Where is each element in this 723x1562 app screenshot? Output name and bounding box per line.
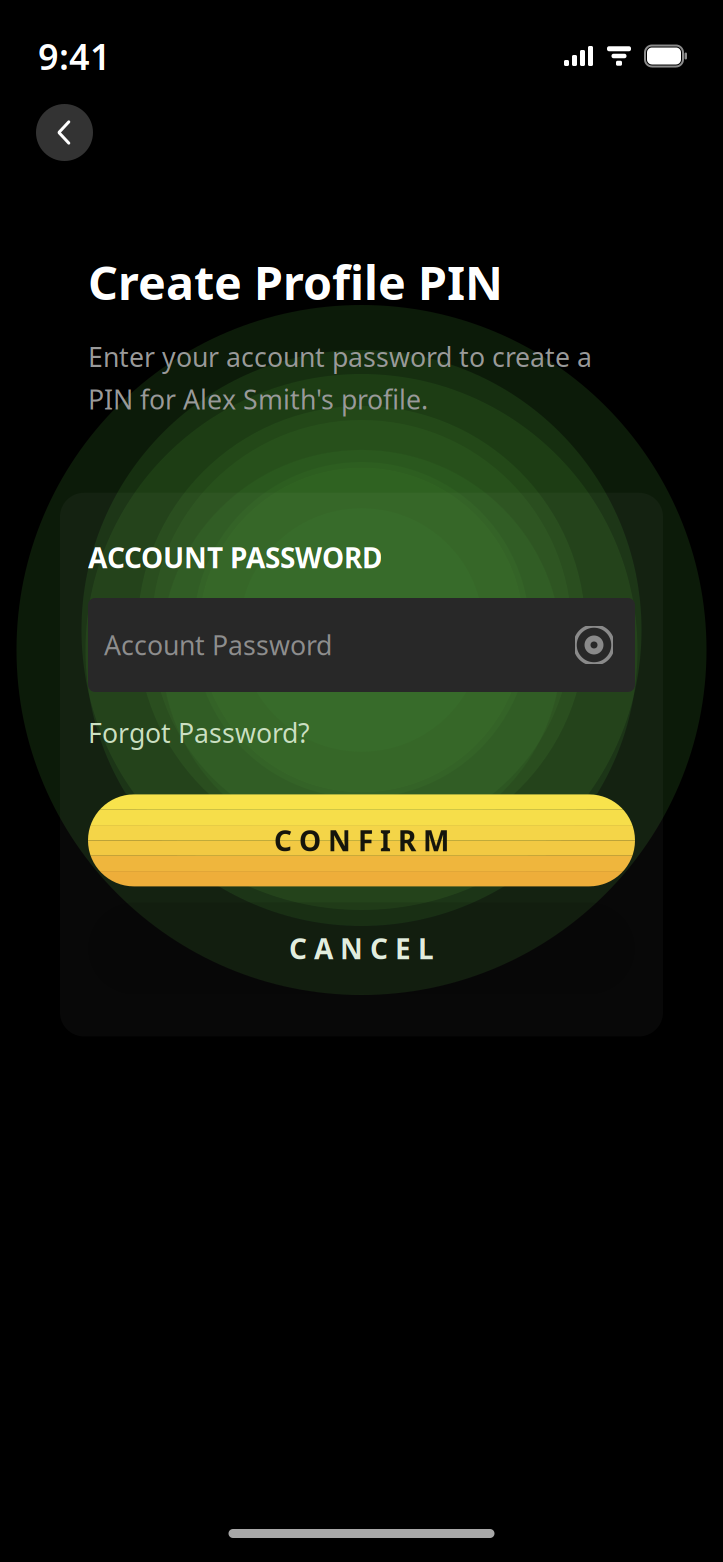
- staticText: Create Profile PIN: [88, 251, 503, 313]
- staticText: Enter your account password to create a: [88, 339, 592, 374]
- staticText: PIN for Alex Smith's profile.: [88, 381, 428, 417]
- button[interactable]: Account Password: [88, 598, 635, 692]
- staticText: C O N F I R M: [274, 822, 449, 859]
- staticText: ACCOUNT PASSWORD: [88, 539, 382, 576]
- staticText: Account Password: [104, 627, 332, 663]
- staticText: Forgot Password?: [88, 715, 310, 750]
- button[interactable]: C A N C E L: [88, 902, 635, 994]
- staticText: C A N C E L: [289, 930, 434, 967]
- button[interactable]: C O N F I R M: [88, 794, 635, 886]
- button[interactable]: Forgot Password?: [88, 709, 635, 756]
- button[interactable]: Back: [36, 104, 93, 161]
- staticText: 9:41: [38, 32, 111, 80]
